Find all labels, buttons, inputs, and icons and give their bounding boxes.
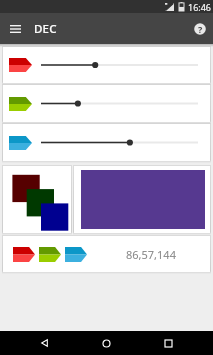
button[interactable]: Navigation menu <box>3 17 27 41</box>
button[interactable]: Recent apps <box>148 331 189 355</box>
staticText: 86,57,144 <box>126 247 176 262</box>
button[interactable] <box>38 124 213 161</box>
button[interactable] <box>38 85 213 122</box>
button[interactable]: Back <box>24 331 65 355</box>
button[interactable]: Home <box>86 331 127 355</box>
button[interactable] <box>38 47 213 83</box>
button[interactable]: Help <box>189 18 211 40</box>
staticText: DEC <box>34 21 57 37</box>
staticText: ? <box>198 23 203 35</box>
staticText: 16:46 <box>188 1 212 13</box>
